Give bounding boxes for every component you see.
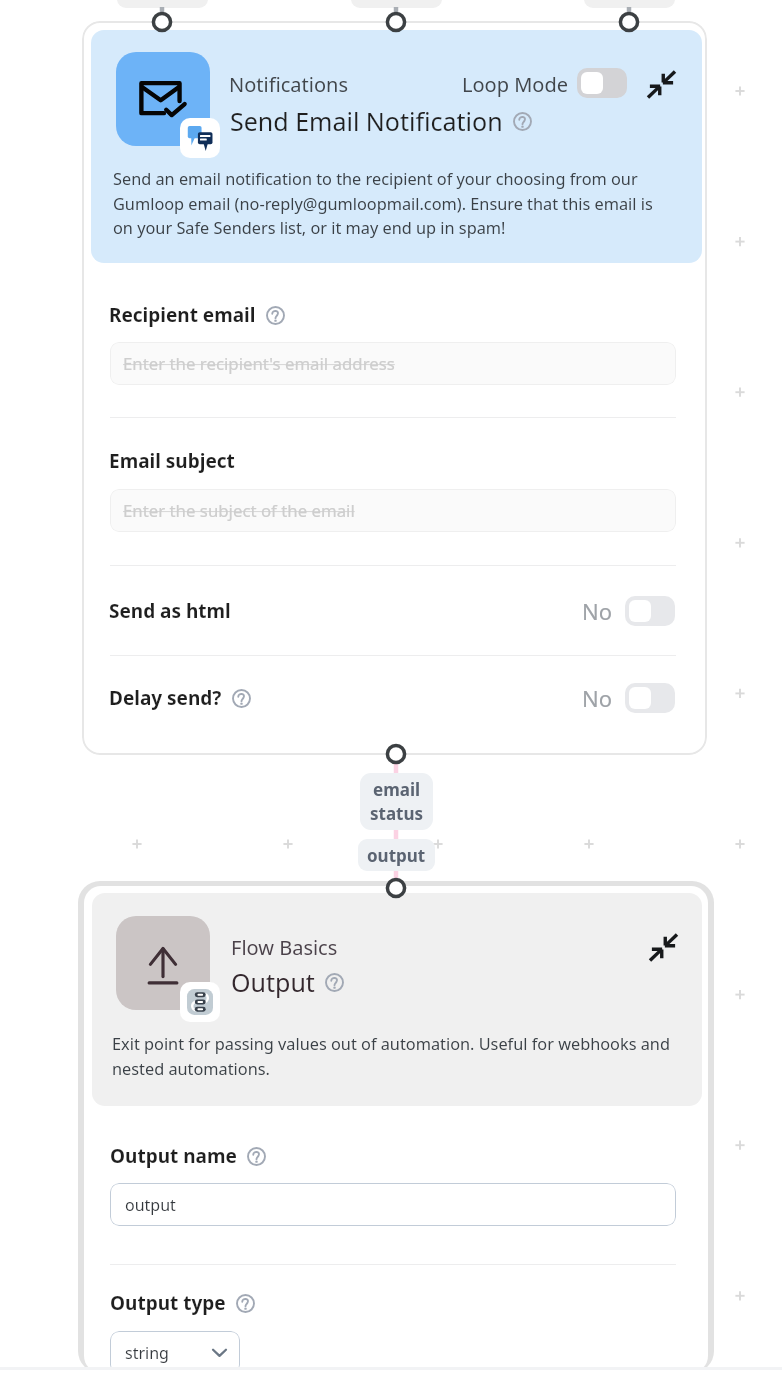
staticText: Output name [110, 1143, 237, 1169]
staticText: string [125, 1342, 169, 1364]
staticText: No [582, 683, 613, 713]
button[interactable]: Notifications [82, 21, 707, 755]
button[interactable]: output [110, 1183, 676, 1226]
staticText: Send Email Notification [230, 104, 503, 138]
staticText: Output type [110, 1290, 226, 1316]
button[interactable]: Flow Basics [84, 886, 708, 1373]
button[interactable]: Toggle [625, 683, 675, 713]
button[interactable]: Delay send? [109, 676, 675, 720]
staticText: status [370, 802, 424, 825]
staticText: Enter the subject of the email [123, 499, 355, 522]
staticText: Enter the recipient's email address [123, 352, 395, 375]
button[interactable]: Collapse [648, 71, 675, 98]
staticText: output [367, 844, 426, 867]
button[interactable]: Toggle [577, 68, 627, 98]
staticText: Notifications [229, 71, 348, 98]
button[interactable]: Collapse [650, 934, 677, 961]
staticText: Send as html [109, 598, 231, 624]
button[interactable]: output [358, 839, 435, 871]
staticText: Output [231, 965, 315, 999]
button[interactable]: Toggle [625, 596, 675, 626]
button[interactable]: Send as html [109, 589, 675, 633]
button[interactable]: string [110, 1331, 240, 1373]
staticText: Loop Mode [462, 71, 568, 98]
button[interactable]: email [360, 773, 433, 830]
staticText: Flow Basics [231, 934, 338, 961]
staticText: Delay send? [109, 685, 222, 711]
button[interactable]: Enter the recipient's email address [110, 342, 676, 385]
staticText: Exit point for passing values out of aut… [112, 1033, 678, 1080]
staticText: Send an email notification to the recipi… [113, 168, 664, 239]
staticText: email [373, 778, 421, 801]
staticText: Email subject [109, 448, 235, 474]
staticText: output [125, 1194, 176, 1216]
button[interactable]: Enter the subject of the email [110, 489, 676, 532]
staticText: Recipient email [109, 302, 256, 328]
staticText: No [582, 596, 613, 626]
